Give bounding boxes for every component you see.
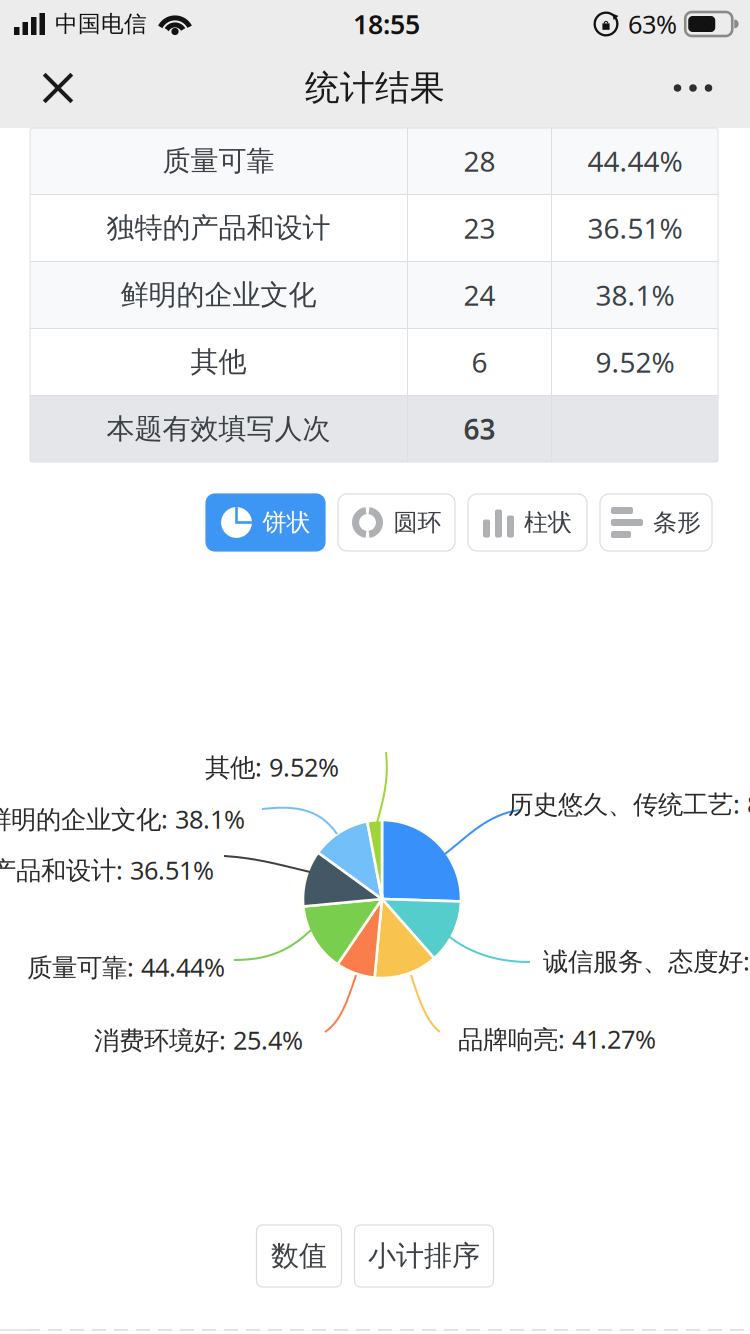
button[interactable]: 条形 [600,494,712,551]
staticText: 消费环境好: 25.4% [94,1023,303,1057]
staticText: 诚信服务、态度好: 41.27% [543,944,750,978]
staticText: 饼状 [262,508,310,537]
button[interactable]: 小计排序 [354,1225,493,1287]
staticText: 24 [463,276,495,314]
staticText: 中国电信 [55,10,147,38]
staticText: 独特的产品和设计 [106,211,330,245]
staticText: 其他: 9.52% [205,750,339,784]
staticText: 63% [628,7,677,41]
staticText: 统计结果 [305,67,445,109]
staticText: 本题有效填写人次 [106,412,330,446]
button[interactable]: 柱状 [468,494,587,551]
staticText: 63 [463,410,495,448]
staticText: 36.51% [587,209,682,247]
staticText: 数值 [271,1239,327,1273]
staticText: 柱状 [524,508,572,537]
staticText: 44.44% [587,142,682,180]
staticText: 鲜明的企业文化: 38.1% [0,802,245,836]
staticText: 6 [471,343,487,381]
staticText: 小计排序 [368,1239,480,1273]
staticText: 历史悠久、传统工艺: 80.95% [508,787,750,821]
staticText: 品牌响亮: 41.27% [458,1022,656,1056]
staticText: 23 [463,209,495,247]
staticText: 28 [463,142,495,180]
staticText: 18:55 [353,6,420,42]
staticText: 质量可靠: 44.44% [27,950,225,984]
staticText: 9.52% [595,343,674,381]
button[interactable]: 数值 [256,1225,341,1287]
button[interactable]: Close [12,48,98,128]
staticText: 圆环 [393,508,441,537]
button[interactable]: 饼状 [206,494,325,551]
staticText: 独特的产品和设计: 36.51% [0,853,214,887]
staticText: 其他 [190,345,246,379]
staticText: 条形 [653,508,701,537]
button[interactable]: More [652,48,738,128]
staticText: 质量可靠 [162,144,274,178]
button[interactable]: 圆环 [338,494,455,551]
staticText: 鲜明的企业文化 [120,278,316,312]
staticText: 38.1% [595,276,674,314]
